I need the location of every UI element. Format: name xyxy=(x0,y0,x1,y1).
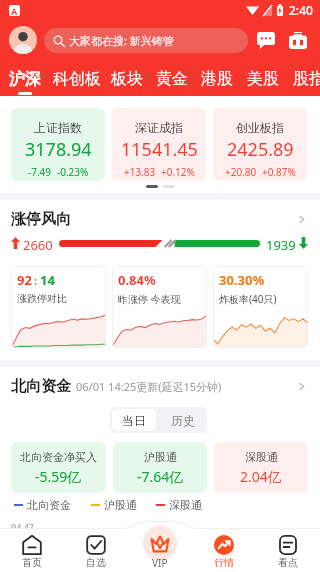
staticText: +0.87% xyxy=(262,165,296,179)
staticText: 北向资金净买入 xyxy=(20,450,97,464)
button[interactable]: 看点 xyxy=(256,521,320,572)
staticText: 自选 xyxy=(86,556,106,569)
button[interactable]: 创业板指 xyxy=(213,108,307,181)
staticText: VIP xyxy=(152,556,168,570)
staticText: 06/01 14:25更新(延迟15分钟) xyxy=(76,379,222,394)
button[interactable]: 美股 xyxy=(240,60,285,96)
staticText: 昨涨停 今表现 xyxy=(118,292,181,306)
staticText: -7.64亿 xyxy=(137,467,184,486)
staticText: 沪股通 xyxy=(144,450,177,464)
staticText: 当日 xyxy=(122,413,146,428)
button[interactable]: 行情 xyxy=(192,521,256,572)
staticText: 2.04亿 xyxy=(240,467,282,486)
button[interactable]: 首页 xyxy=(0,521,64,572)
staticText: 股指 xyxy=(293,69,320,89)
button[interactable]: 板块 xyxy=(104,60,149,96)
button[interactable]: Messages xyxy=(254,28,278,52)
staticText: 北向资金 xyxy=(11,377,71,396)
staticText: 深证成指 xyxy=(135,120,183,135)
staticText: 94.47 xyxy=(11,521,35,533)
button[interactable]: 30.30% xyxy=(213,266,308,348)
staticText: 首页 xyxy=(22,556,42,569)
staticText: 港股 xyxy=(201,69,233,89)
staticText: 科创板 xyxy=(53,69,101,89)
staticText: 30.30% xyxy=(219,271,265,289)
button[interactable]: 涨停风向 xyxy=(11,210,308,229)
button[interactable]: 历史 xyxy=(158,407,207,433)
button[interactable]: 当日 xyxy=(112,409,156,431)
staticText: +0.12% xyxy=(161,165,195,179)
staticText: A xyxy=(11,5,18,16)
staticText: 92 xyxy=(17,271,32,289)
button[interactable]: 港股 xyxy=(194,60,239,96)
button[interactable]: 自选 xyxy=(64,521,128,572)
button[interactable]: 大家都在搜: 新兴铸管 xyxy=(44,28,248,53)
staticText: -5.59亿 xyxy=(35,467,82,486)
staticText: 大家都在搜: 新兴铸管 xyxy=(69,33,174,48)
staticText: : xyxy=(34,273,38,288)
button[interactable]: 科创板 xyxy=(46,60,108,96)
button[interactable]: 上证指数 xyxy=(11,108,105,181)
staticText: 0.84% xyxy=(118,271,156,289)
staticText: -7.49 xyxy=(28,165,52,179)
button[interactable]: 股指 xyxy=(286,60,320,96)
staticText: 深股通 xyxy=(169,498,202,512)
staticText: 创业板指 xyxy=(236,120,284,135)
staticText: 看点 xyxy=(278,556,298,569)
button[interactable]: 北向资金净买入 xyxy=(11,442,106,493)
button[interactable]: 0.84% xyxy=(112,266,207,348)
staticText: 沪深 xyxy=(9,69,41,89)
button[interactable]: Profile xyxy=(9,26,37,54)
staticText: 北向资金 xyxy=(27,498,71,512)
button[interactable]: AI assistant xyxy=(286,28,310,52)
staticText: 3178.94 xyxy=(25,137,92,162)
staticText: 2425.89 xyxy=(227,137,294,162)
staticText: 美股 xyxy=(247,69,279,89)
staticText: 2:40 xyxy=(289,2,313,18)
button[interactable]: 沪深 xyxy=(2,60,47,96)
staticText: -0.23% xyxy=(57,165,89,179)
staticText: +13.83 xyxy=(124,165,156,179)
staticText: 历史 xyxy=(171,413,195,428)
staticText: 深股通 xyxy=(245,450,278,464)
staticText: 沪股通 xyxy=(104,498,137,512)
staticText: 11541.45 xyxy=(121,137,198,162)
button[interactable]: 深股通 xyxy=(214,442,308,493)
staticText: 涨停风向 xyxy=(11,210,71,229)
button[interactable]: 北向资金 xyxy=(11,377,308,396)
staticText: 1939 xyxy=(266,236,296,250)
staticText: 涨跌停对比 xyxy=(17,292,67,305)
button[interactable]: 深证成指 xyxy=(112,108,206,181)
staticText: +20.80 xyxy=(225,165,257,179)
staticText: 行情 xyxy=(214,556,234,569)
button[interactable]: 黄金 xyxy=(149,60,194,96)
staticText: 炸板率(40只) xyxy=(219,292,277,306)
staticText: 上证指数 xyxy=(34,120,82,135)
staticText: 板块 xyxy=(111,69,143,89)
staticText: 2660 xyxy=(23,236,53,250)
button[interactable]: 92 xyxy=(11,266,106,348)
staticText: 黄金 xyxy=(156,69,188,89)
button[interactable]: VIP xyxy=(128,521,192,572)
staticText: 14 xyxy=(40,271,55,289)
button[interactable]: 沪股通 xyxy=(113,442,207,493)
